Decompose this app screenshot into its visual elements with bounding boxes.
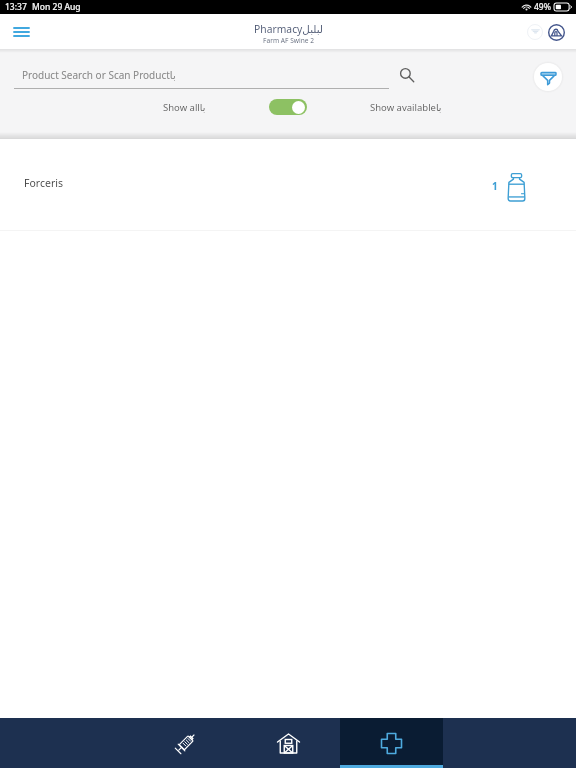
staticText: Forceris <box>24 176 63 190</box>
staticText: 49% <box>534 1 551 13</box>
button[interactable]: Show availableبا <box>370 99 442 116</box>
button[interactable]: Menu <box>0 14 42 49</box>
staticText: 13:37 <box>5 1 27 13</box>
staticText: 1 <box>492 179 498 193</box>
staticText: Pharmacyلبلبل <box>254 22 323 36</box>
button[interactable]: Search <box>394 62 420 88</box>
staticText: Mon 29 Aug <box>32 1 81 13</box>
button[interactable]: Show available toggle <box>269 99 307 115</box>
button[interactable]: Vaccines <box>134 718 237 768</box>
staticText: Show allبا <box>163 101 206 114</box>
staticText: Show availableبا <box>370 101 442 114</box>
button[interactable]: Filter <box>534 63 562 91</box>
staticText: Product Search or Scan Productبا <box>22 68 176 82</box>
staticText: Farm AF Swine 2 <box>263 36 314 45</box>
button[interactable]: Show allبا <box>163 99 206 116</box>
button[interactable]: Forceris <box>0 139 576 231</box>
button[interactable]: Pharmacy <box>340 718 443 768</box>
button[interactable]: Farm <box>237 718 340 768</box>
button[interactable]: Sync <box>545 21 567 43</box>
button[interactable]: Connection status <box>524 21 546 43</box>
